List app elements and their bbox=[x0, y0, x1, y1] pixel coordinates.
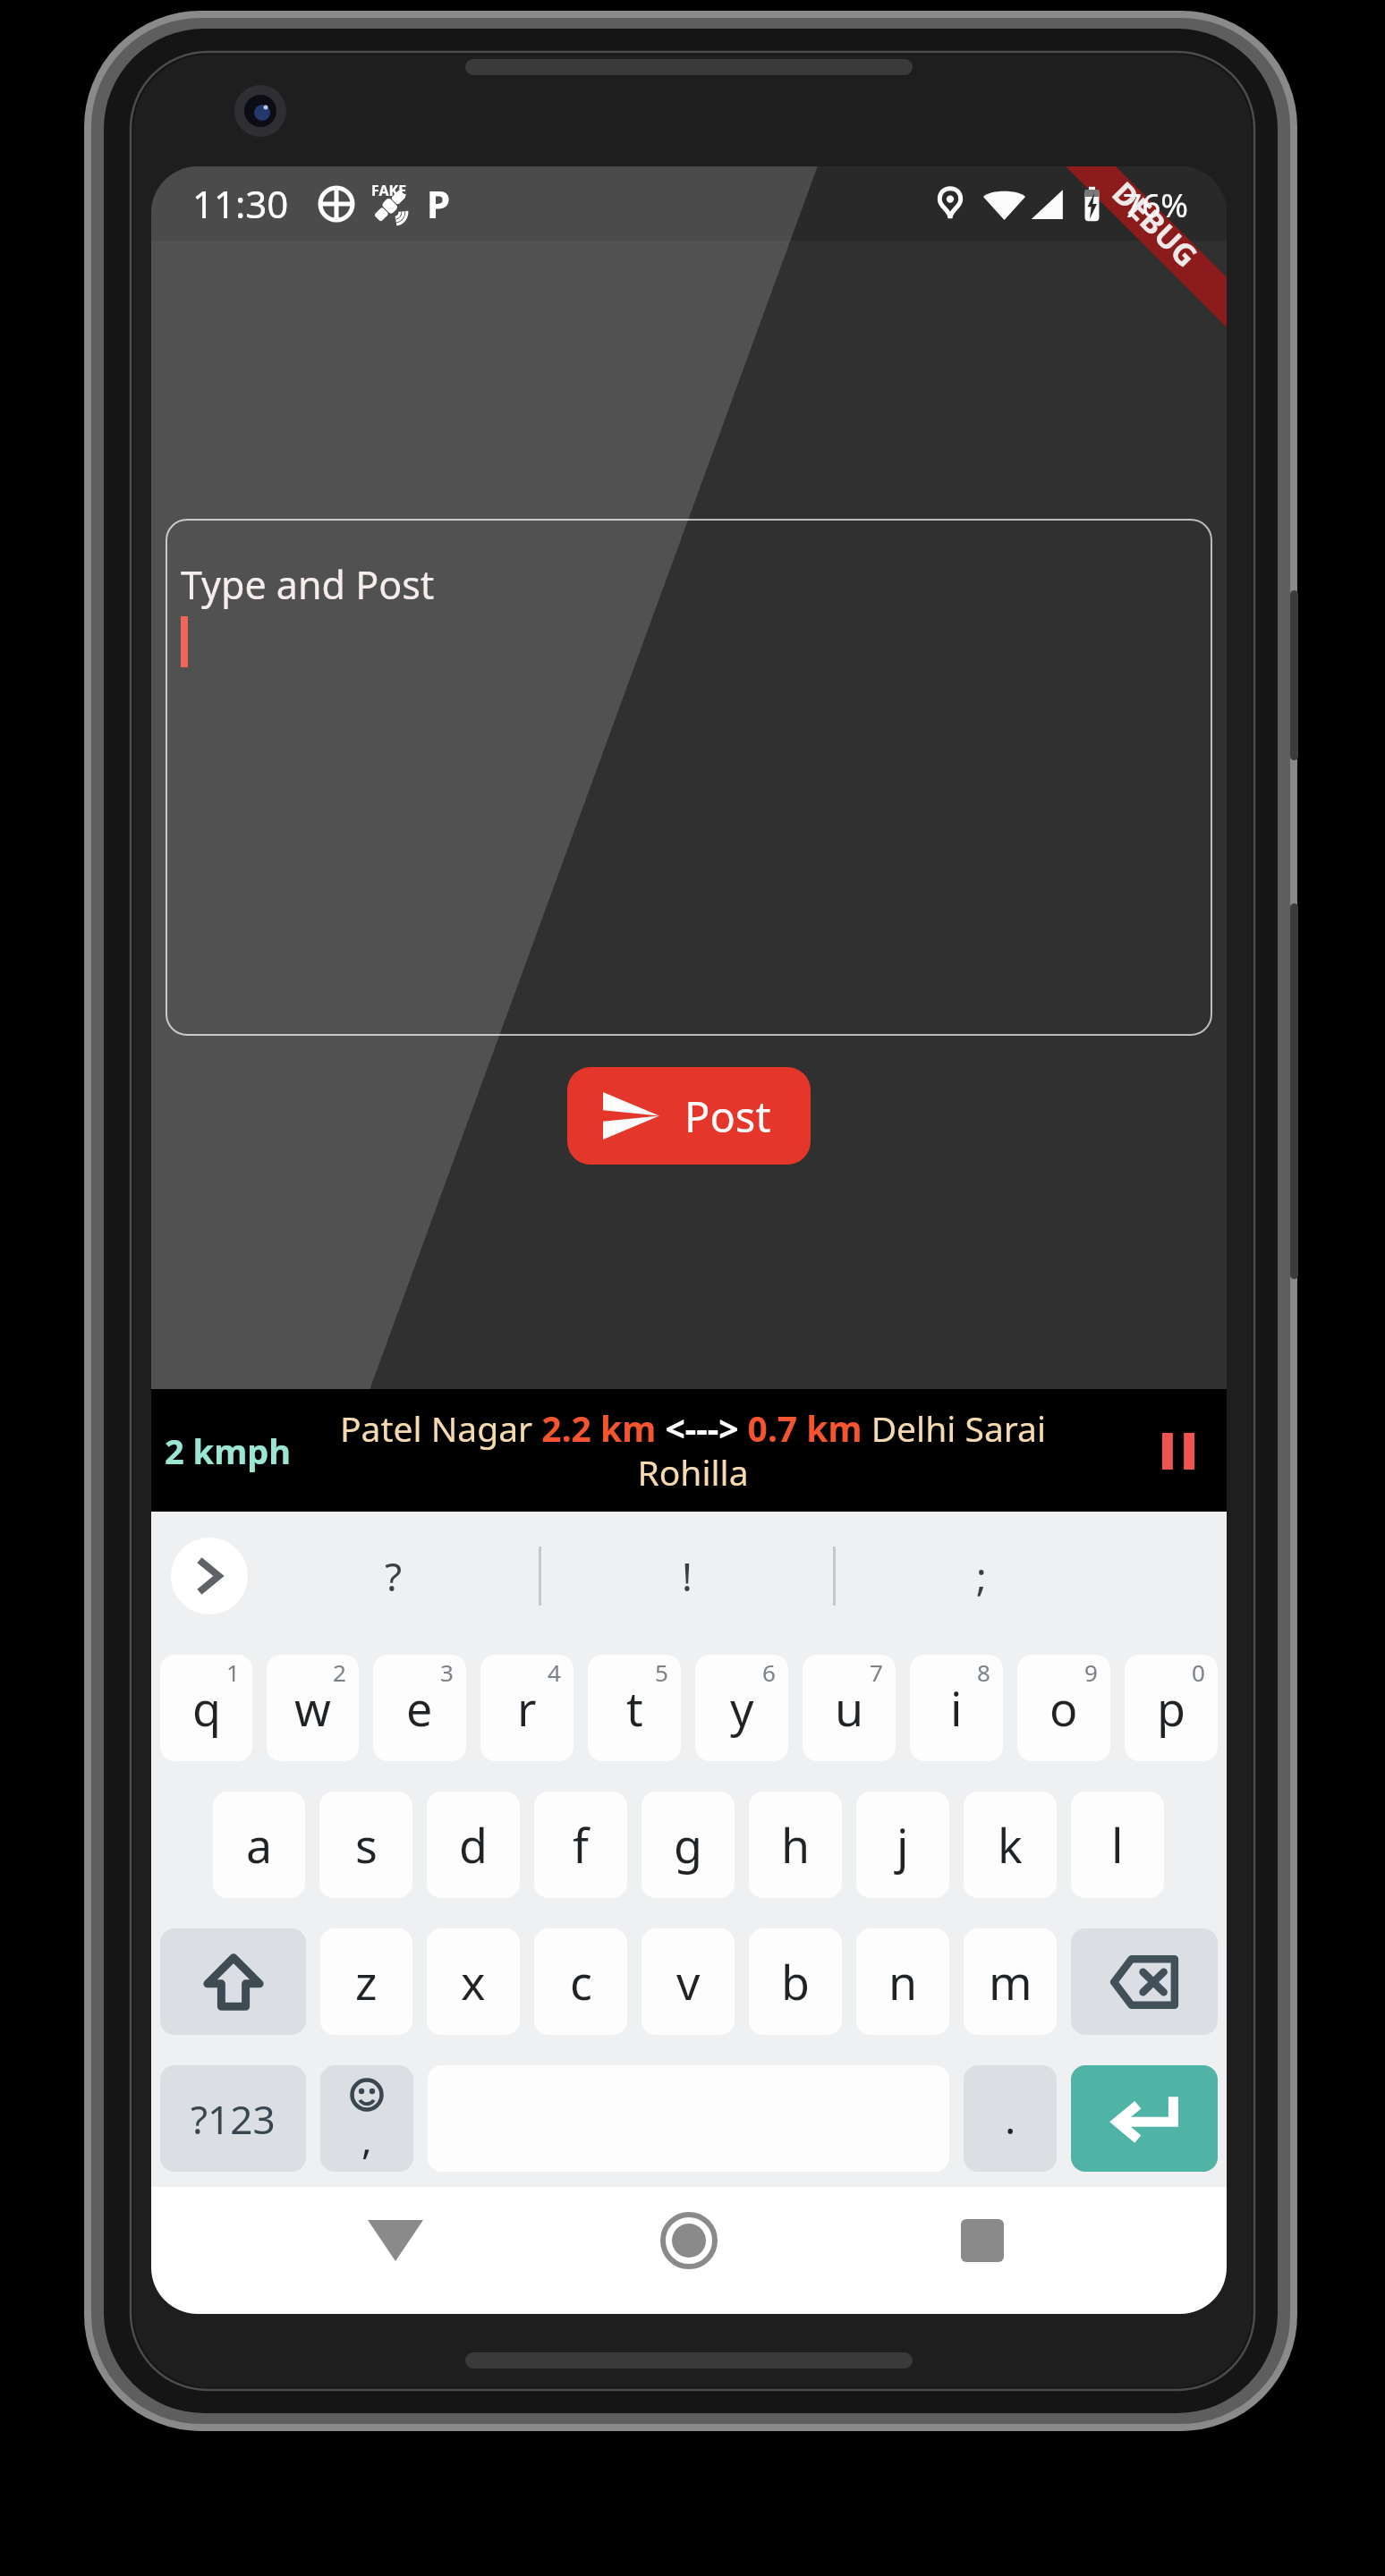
button[interactable]: . bbox=[964, 2065, 1057, 2172]
staticText: ? bbox=[385, 1549, 403, 1603]
staticText: 2 bbox=[333, 1657, 346, 1688]
staticText: m bbox=[989, 1950, 1032, 2013]
staticText: 7 bbox=[870, 1657, 883, 1688]
staticText: 11:30 bbox=[192, 178, 289, 229]
staticText: e bbox=[406, 1676, 433, 1740]
staticText: a bbox=[246, 1813, 273, 1877]
button[interactable]: Backspace bbox=[1071, 1928, 1218, 2035]
staticText: v bbox=[676, 1950, 701, 2013]
button[interactable]: s bbox=[319, 1792, 412, 1898]
staticText: 9 bbox=[1084, 1657, 1098, 1688]
staticText: . bbox=[1005, 2090, 1016, 2147]
staticText: ! bbox=[682, 1549, 692, 1603]
staticText: i bbox=[950, 1676, 963, 1740]
staticText: FAKE bbox=[371, 181, 407, 200]
staticText: d bbox=[459, 1813, 488, 1877]
button[interactable]: r bbox=[480, 1655, 574, 1761]
button[interactable]: f bbox=[534, 1792, 627, 1898]
button[interactable]: t bbox=[588, 1655, 681, 1761]
staticText: u bbox=[835, 1676, 864, 1740]
staticText: h bbox=[781, 1813, 811, 1877]
staticText: DEBUG bbox=[1104, 172, 1207, 275]
staticText: k bbox=[998, 1813, 1023, 1877]
button[interactable]: z bbox=[320, 1928, 412, 2035]
button[interactable]: Shift bbox=[160, 1928, 306, 2035]
staticText: Type and Post bbox=[181, 558, 435, 611]
button[interactable]: n bbox=[856, 1928, 949, 2035]
button[interactable]: Post bbox=[567, 1067, 811, 1165]
staticText: P bbox=[427, 178, 451, 229]
staticText: j bbox=[896, 1813, 909, 1877]
button[interactable]: p bbox=[1125, 1655, 1218, 1761]
staticText: 0 bbox=[1192, 1657, 1205, 1688]
staticText: Patel Nagar 2.2 km <---> 0.7 km Delhi Sa… bbox=[302, 1404, 1084, 1496]
button[interactable]: w bbox=[267, 1655, 359, 1761]
button[interactable]: Expand suggestions bbox=[171, 1538, 248, 1614]
staticText: b bbox=[781, 1950, 810, 2013]
staticText: ?123 bbox=[191, 2092, 276, 2146]
staticText: 4 bbox=[548, 1657, 561, 1688]
button[interactable]: ; bbox=[836, 1512, 1127, 1640]
button[interactable]: k bbox=[964, 1792, 1057, 1898]
staticText: , bbox=[361, 2112, 372, 2159]
staticText: 6 bbox=[762, 1657, 776, 1688]
staticText: q bbox=[192, 1676, 221, 1740]
staticText: o bbox=[1049, 1676, 1078, 1740]
staticText: c bbox=[570, 1950, 592, 2013]
staticText: 2 kmph bbox=[165, 1428, 291, 1474]
button[interactable]: Recents bbox=[933, 2191, 1032, 2290]
staticText: l bbox=[1111, 1813, 1124, 1877]
button[interactable]: q bbox=[160, 1655, 252, 1761]
staticText: y bbox=[730, 1676, 754, 1740]
button[interactable]: e bbox=[373, 1655, 466, 1761]
staticText: p bbox=[1157, 1676, 1185, 1740]
staticText: g bbox=[674, 1813, 702, 1877]
button[interactable]: c bbox=[534, 1928, 627, 2035]
staticText: x bbox=[461, 1950, 486, 2013]
button[interactable]: ! bbox=[541, 1512, 833, 1640]
button[interactable]: ? bbox=[248, 1512, 539, 1640]
staticText: z bbox=[355, 1950, 378, 2013]
staticText: n bbox=[888, 1950, 918, 2013]
button[interactable]: y bbox=[695, 1655, 788, 1761]
button[interactable]: m bbox=[964, 1928, 1057, 2035]
staticText: 8 bbox=[977, 1657, 990, 1688]
staticText: t bbox=[626, 1676, 643, 1740]
staticText: 3 bbox=[440, 1657, 454, 1688]
button[interactable]: ?123 bbox=[160, 2065, 306, 2172]
button[interactable]: Enter bbox=[1071, 2065, 1218, 2172]
button[interactable]: o bbox=[1017, 1655, 1110, 1761]
button[interactable]: g bbox=[642, 1792, 735, 1898]
button[interactable]: Back bbox=[346, 2191, 445, 2290]
button[interactable]: u bbox=[803, 1655, 896, 1761]
staticText: ; bbox=[976, 1549, 987, 1603]
staticText: r bbox=[517, 1676, 537, 1740]
button[interactable]: h bbox=[749, 1792, 842, 1898]
button[interactable]: j bbox=[856, 1792, 949, 1898]
staticText: 5 bbox=[655, 1657, 668, 1688]
staticText: 76% bbox=[1123, 182, 1189, 226]
button[interactable]: Emoji bbox=[320, 2065, 413, 2172]
button[interactable]: b bbox=[749, 1928, 842, 2035]
button[interactable]: Pause bbox=[1140, 1412, 1217, 1489]
staticText: s bbox=[355, 1813, 378, 1877]
button[interactable]: x bbox=[427, 1928, 520, 2035]
button[interactable]: a bbox=[213, 1792, 305, 1898]
button[interactable]: l bbox=[1071, 1792, 1164, 1898]
button[interactable]: i bbox=[910, 1655, 1003, 1761]
staticText: 1 bbox=[226, 1657, 240, 1688]
staticText: w bbox=[294, 1676, 331, 1740]
staticText: f bbox=[573, 1813, 589, 1877]
button[interactable]: v bbox=[642, 1928, 735, 2035]
staticText: Post bbox=[684, 1088, 771, 1145]
button[interactable]: Home bbox=[640, 2191, 738, 2290]
button[interactable]: d bbox=[427, 1792, 520, 1898]
